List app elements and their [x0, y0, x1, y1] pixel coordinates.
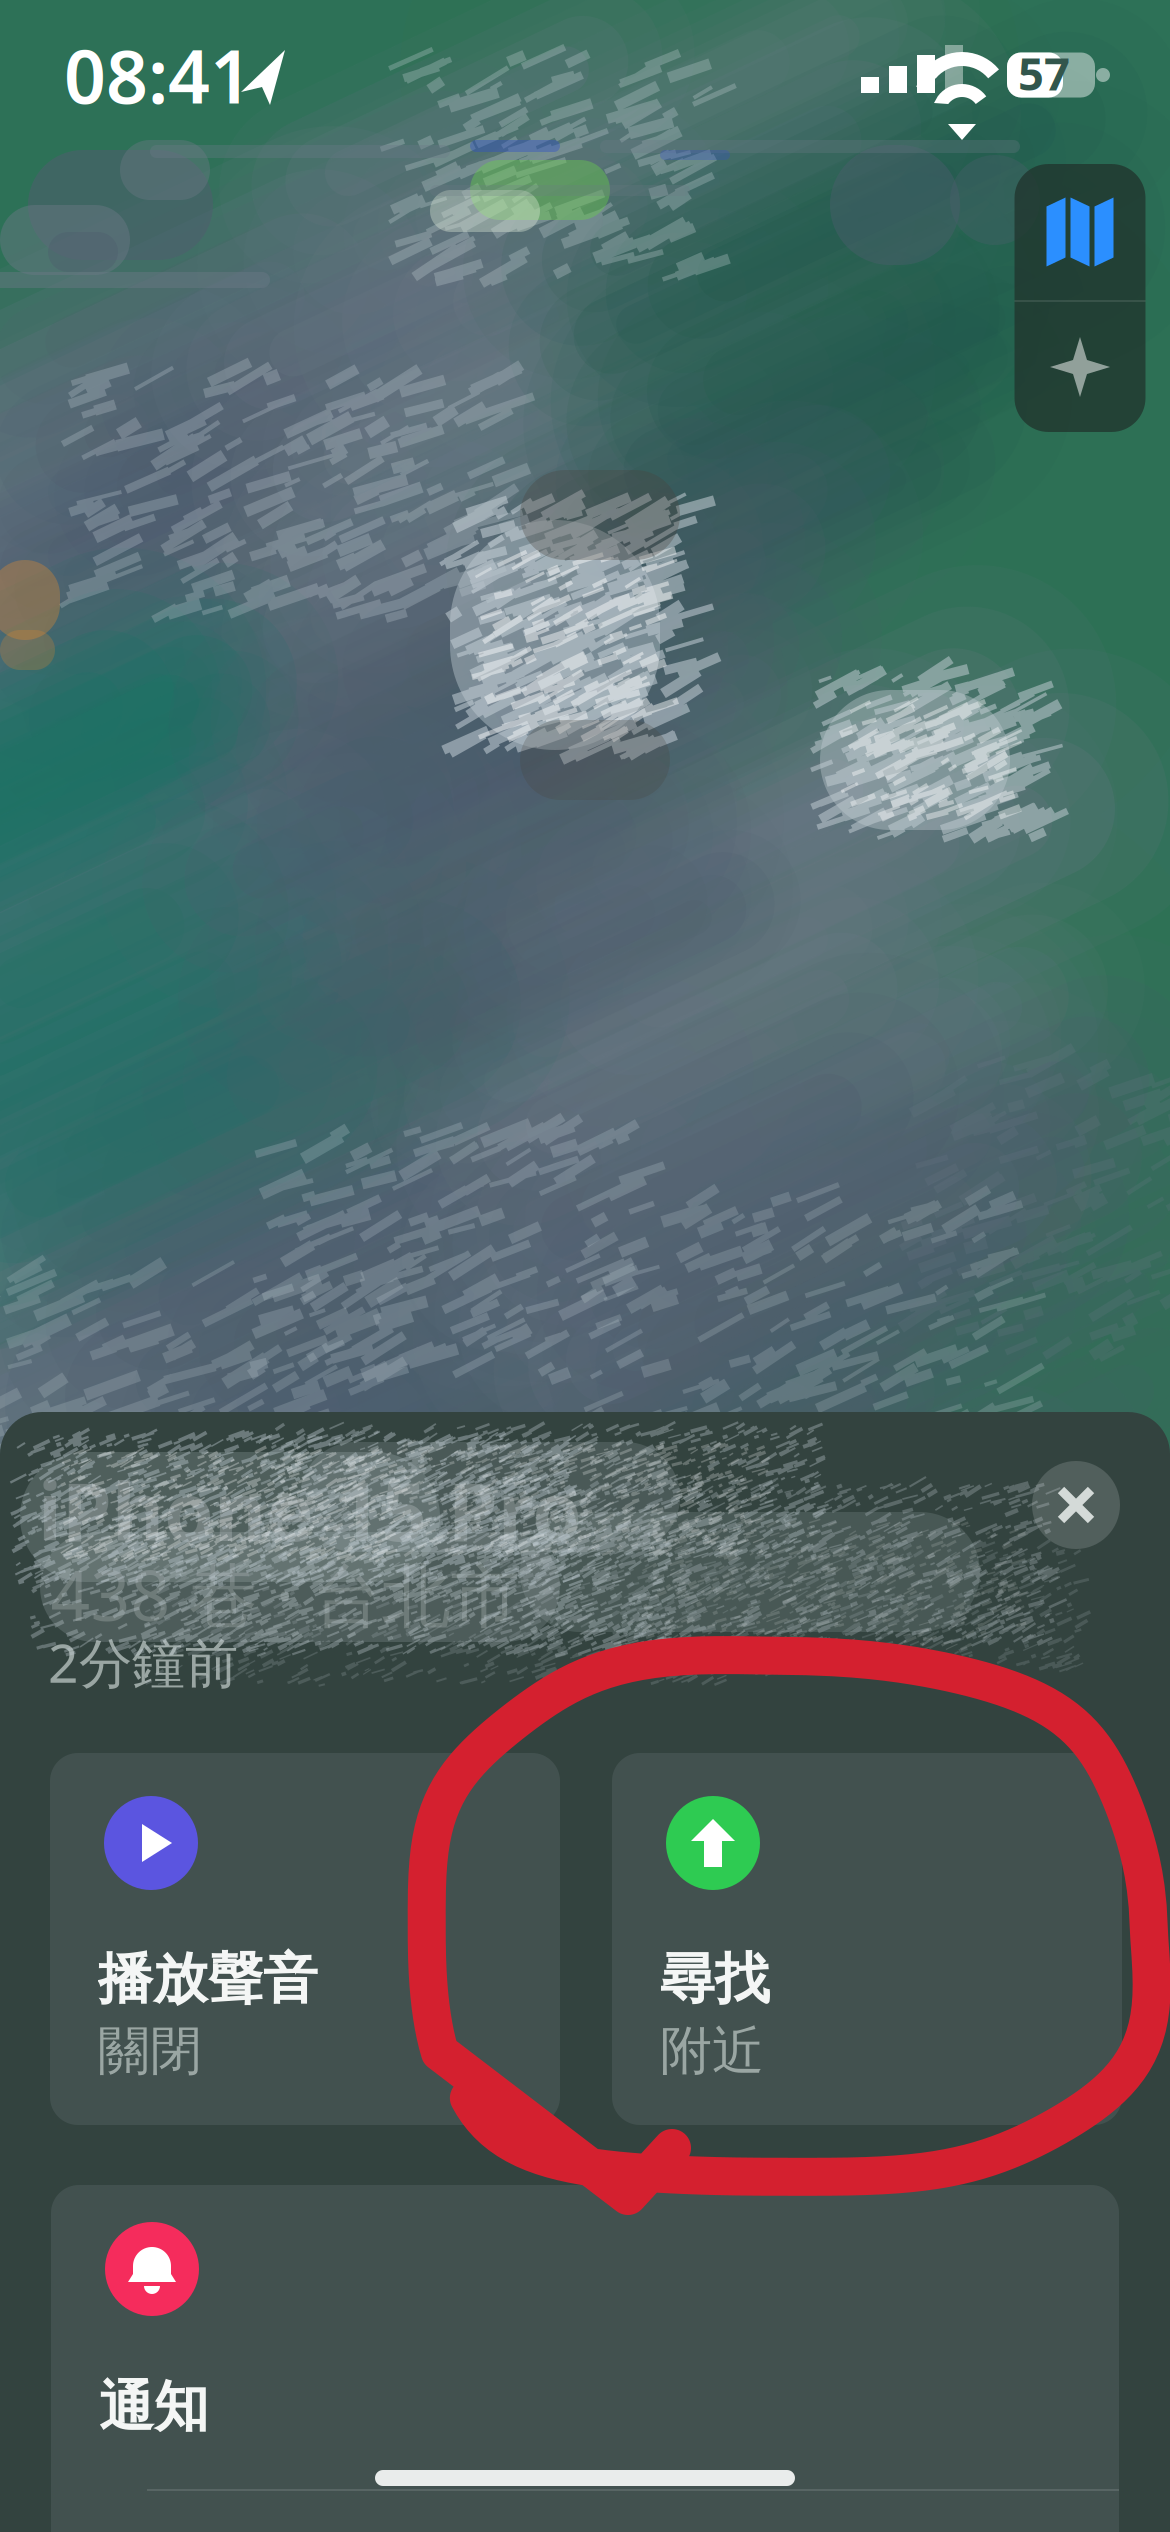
- staticText: 08:41: [64, 26, 252, 124]
- staticText: 438 巷 · 台北市: [50, 1548, 519, 1640]
- staticText: 通知: [99, 2373, 209, 2440]
- staticText: 關閉: [98, 2019, 202, 2083]
- staticText: 2分鐘前: [48, 1627, 238, 1697]
- button[interactable]: 尋找: [612, 1753, 1122, 2125]
- button[interactable]: 播放聲音: [50, 1753, 560, 2125]
- button[interactable]: 通知: [51, 2185, 1119, 2532]
- button[interactable]: Center on current location: [1014, 302, 1145, 432]
- staticText: 播放聲音: [98, 1945, 318, 2012]
- staticText: 附近: [660, 2019, 764, 2083]
- staticText: 57: [1018, 43, 1070, 103]
- button[interactable]: Map type: [1014, 164, 1145, 300]
- staticText: 尋找: [660, 1945, 770, 2012]
- button[interactable]: Close: [1032, 1461, 1120, 1549]
- staticText: iPhone 15 Pro: [38, 1457, 582, 1563]
